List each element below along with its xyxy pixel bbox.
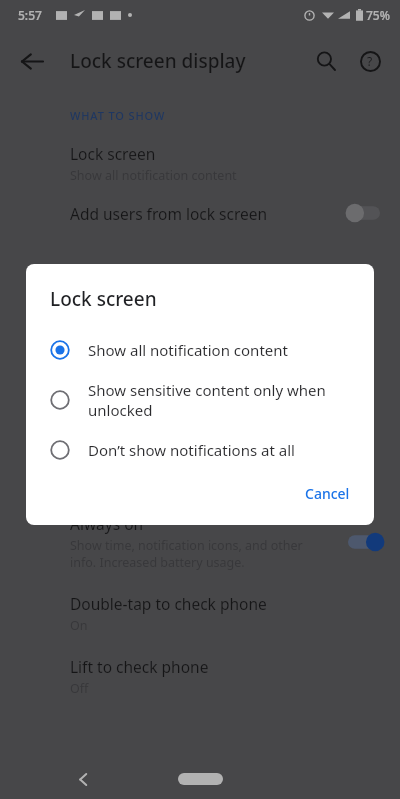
- button[interactable]: Search: [304, 39, 348, 83]
- staticText: Off: [70, 680, 89, 697]
- button[interactable]: Home: [178, 773, 223, 785]
- button[interactable]: Double-tap to check phone: [0, 593, 400, 634]
- staticText: 5:57: [18, 7, 42, 23]
- button[interactable]: Back: [68, 764, 98, 794]
- staticText: Show time, notification icons, and other…: [70, 537, 303, 571]
- staticText: Show all notification content: [70, 167, 237, 184]
- staticText: ?: [367, 53, 373, 69]
- button[interactable]: Add users from lock screen: [0, 202, 400, 224]
- button[interactable]: Show sensitive content only when unlocke…: [26, 370, 374, 430]
- staticText: 75%: [366, 7, 390, 23]
- staticText: On: [70, 617, 88, 634]
- staticText: Lock screen: [70, 143, 156, 164]
- staticText: Lock screen display: [70, 48, 246, 74]
- staticText: Always on: [70, 513, 144, 534]
- staticText: Double-tap to check phone: [70, 593, 267, 614]
- staticText: Cancel: [305, 484, 350, 503]
- staticText: Lock screen: [50, 286, 157, 312]
- button[interactable]: Show all notification content: [26, 330, 374, 370]
- button[interactable]: Cancel: [295, 476, 360, 511]
- button[interactable]: Help: [348, 39, 392, 83]
- staticText: Show all notification content: [88, 340, 288, 360]
- button[interactable]: Always on: [0, 513, 400, 571]
- button[interactable]: Lift to check phone: [0, 656, 400, 697]
- staticText: WHAT TO SHOW: [70, 108, 166, 123]
- staticText: Don’t show notifications at all: [88, 440, 295, 460]
- button[interactable]: Lock screen: [0, 143, 400, 184]
- staticText: Show sensitive content only when unlocke…: [88, 380, 326, 420]
- button[interactable]: Back: [10, 39, 54, 83]
- staticText: Add users from lock screen: [70, 203, 268, 224]
- button[interactable]: Don’t show notifications at all: [26, 430, 374, 470]
- staticText: Lift to check phone: [70, 656, 209, 677]
